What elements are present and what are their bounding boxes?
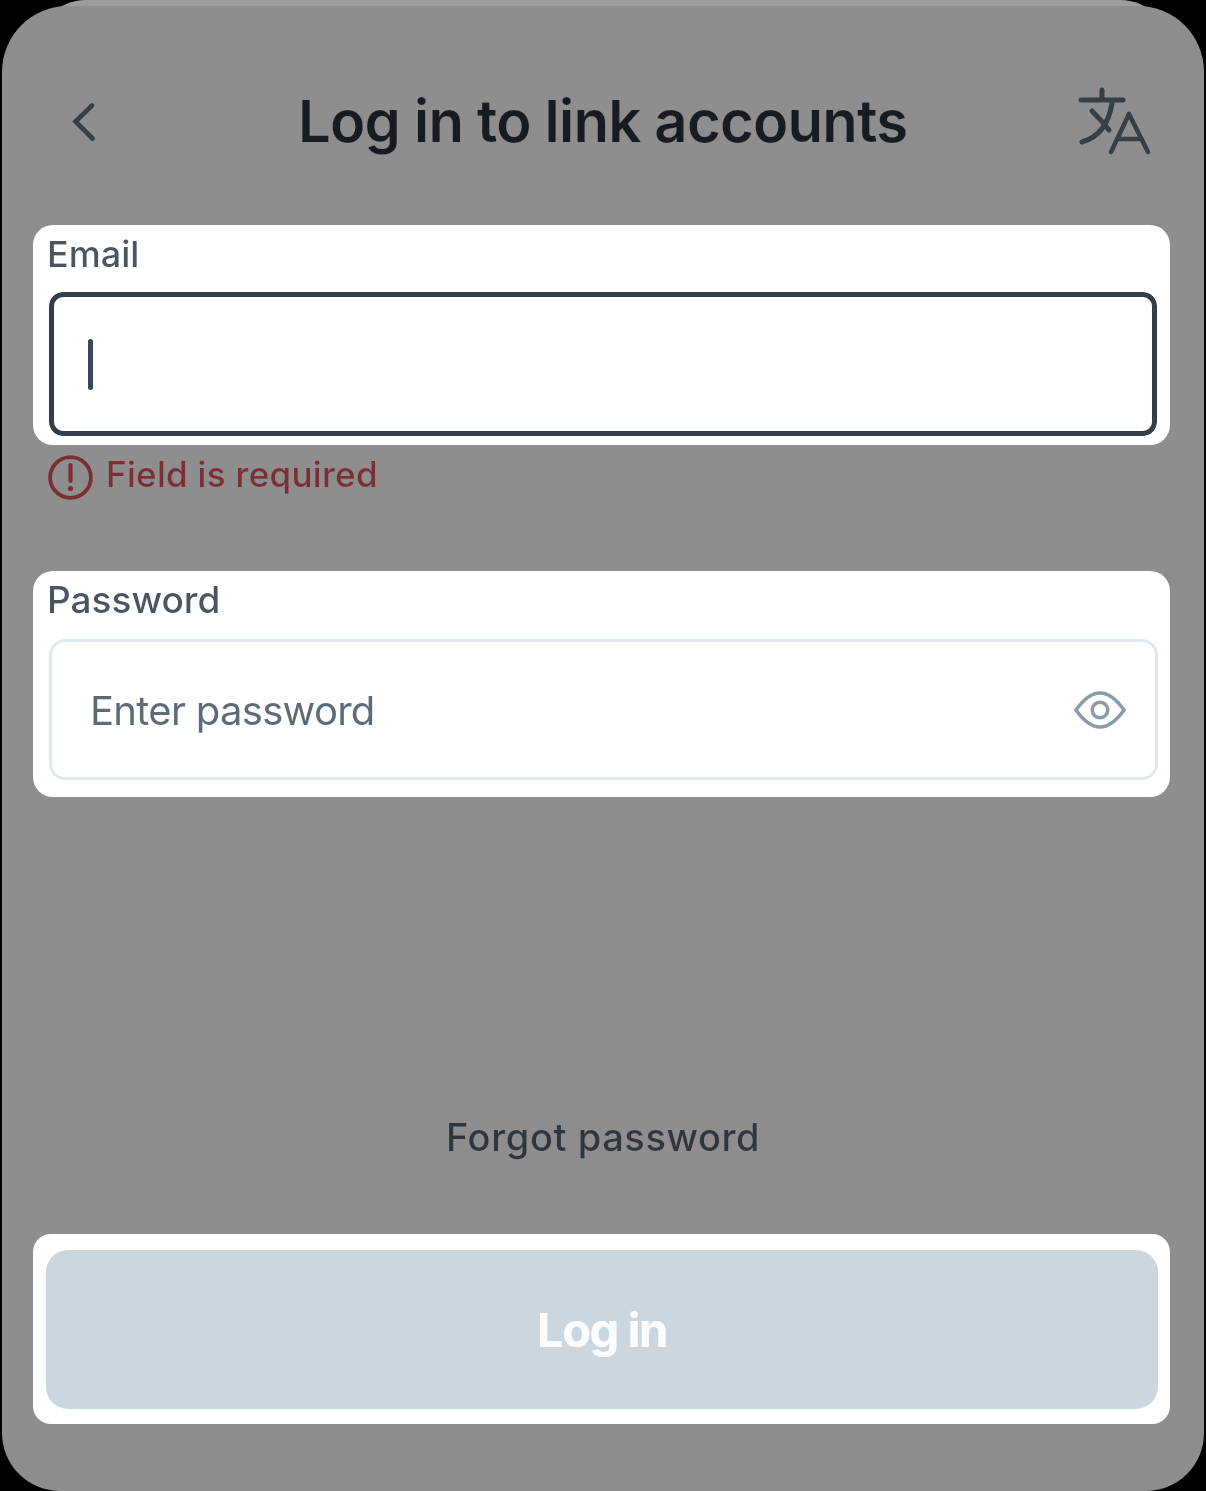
staticText: Password <box>47 577 221 622</box>
staticText: Log in to link accounts <box>298 86 908 156</box>
button[interactable] <box>1075 685 1125 735</box>
button[interactable] <box>48 87 120 159</box>
staticText: Email <box>47 232 140 276</box>
staticText: Enter password <box>90 686 375 734</box>
button[interactable]: Enter password <box>49 639 1158 780</box>
button[interactable]: Log in <box>46 1250 1158 1409</box>
staticText: Field is required <box>106 453 378 495</box>
button[interactable]: Forgot password <box>446 1114 761 1160</box>
button[interactable] <box>1061 82 1151 172</box>
button[interactable] <box>49 292 1157 436</box>
staticText: Log in <box>537 1301 667 1358</box>
